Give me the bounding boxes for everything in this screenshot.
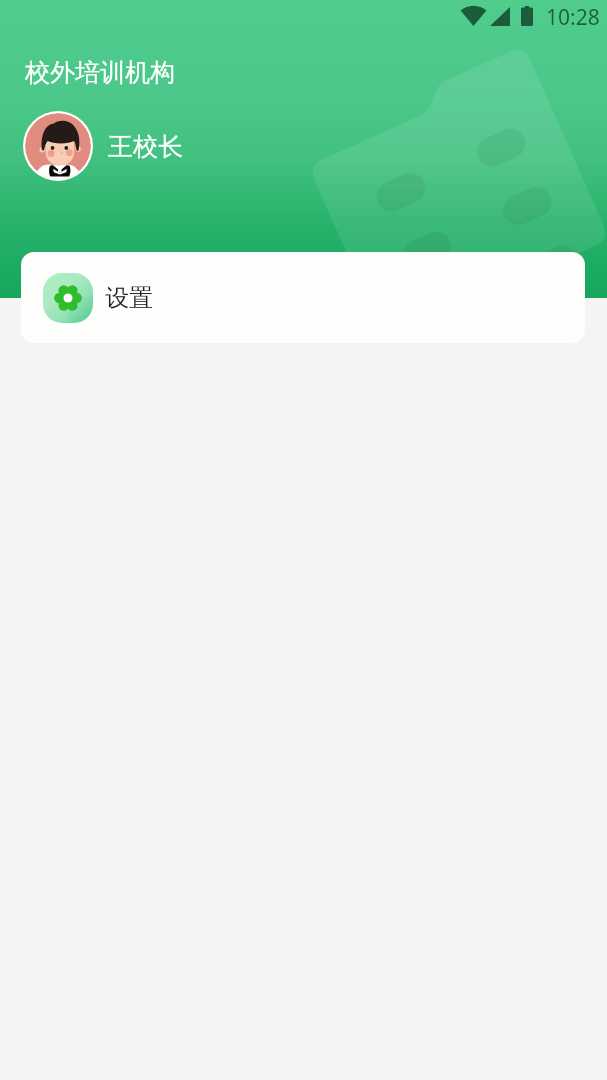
staticText: 校外培训机构 [25,57,175,88]
button[interactable]: 设置 [21,252,585,343]
staticText: 设置 [105,283,153,313]
button[interactable]: Profile [25,113,91,179]
staticText: 王校长 [108,131,183,162]
staticText: 10:28 [546,3,600,32]
